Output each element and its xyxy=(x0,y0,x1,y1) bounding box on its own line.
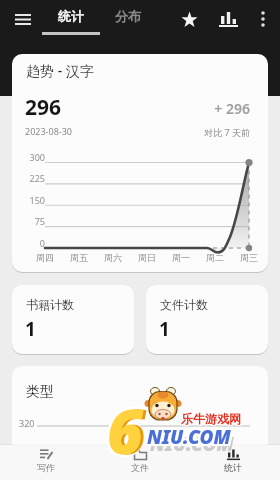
staticText: 趋势 - 汉字 xyxy=(26,61,94,80)
button[interactable] xyxy=(213,5,243,33)
button[interactable]: 文件计数 xyxy=(146,285,268,354)
staticText: 6 xyxy=(105,388,141,472)
staticText: 周三 xyxy=(232,252,266,263)
staticText: 乐牛游戏网 xyxy=(182,412,242,427)
staticText: 文件计数 xyxy=(160,297,208,312)
button[interactable] xyxy=(8,5,38,33)
button[interactable] xyxy=(249,5,277,33)
staticText: 6 xyxy=(105,386,141,470)
staticText: 周二 xyxy=(198,252,232,263)
staticText: NIU.COM xyxy=(145,422,229,448)
staticText: 乐牛游戏网 xyxy=(180,412,240,427)
staticText: 乐牛游戏网 xyxy=(182,410,242,425)
button[interactable] xyxy=(175,5,203,33)
staticText: NIU.COM xyxy=(150,431,234,457)
staticText: NIU.COM xyxy=(147,426,231,452)
staticText: 2023-08-30 xyxy=(25,125,72,137)
button[interactable]: 统计 xyxy=(200,446,266,480)
button[interactable]: 写作 xyxy=(13,446,79,480)
staticText: 150 xyxy=(12,194,45,206)
staticText: 周六 xyxy=(96,252,130,263)
staticText: 6 xyxy=(105,390,141,474)
staticText: 1 xyxy=(159,316,170,342)
staticText: 6 xyxy=(110,388,146,472)
staticText: 类型 xyxy=(26,383,54,401)
staticText: 文件 xyxy=(131,462,149,473)
staticText: 周一 xyxy=(164,252,198,263)
staticText: 写作 xyxy=(37,462,55,473)
staticText: 296 xyxy=(25,93,62,122)
staticText: 统计 xyxy=(58,8,84,24)
button[interactable]: 分布 xyxy=(100,0,156,35)
staticText: 6 xyxy=(109,388,145,472)
staticText: NIU.COM xyxy=(149,426,233,452)
staticText: NIU.COM xyxy=(147,424,231,450)
staticText: NIU.COM xyxy=(145,426,229,452)
staticText: 0 xyxy=(12,237,45,249)
staticText: NIU.COM xyxy=(149,424,233,450)
button[interactable]: 类型 xyxy=(12,366,268,480)
staticText: 6 xyxy=(109,386,145,470)
staticText: 1 xyxy=(25,316,36,342)
staticText: NIU.COM xyxy=(147,422,231,448)
button[interactable]: 文件 xyxy=(107,446,173,480)
staticText: 周五 xyxy=(62,252,96,263)
staticText: 乐牛游戏网 xyxy=(181,411,241,426)
staticText: NIU.COM xyxy=(149,422,233,448)
staticText: 6 xyxy=(107,386,143,470)
staticText: 6 xyxy=(107,388,143,472)
button[interactable]: 趋势 - 汉字 xyxy=(12,54,268,272)
staticText: 对比 7 天前 xyxy=(150,126,250,138)
staticText: 6 xyxy=(107,390,143,474)
staticText: 周四 xyxy=(28,252,62,263)
button[interactable]: 统计 xyxy=(42,0,100,35)
staticText: 分布 xyxy=(115,8,141,24)
staticText: 统计 xyxy=(224,462,242,473)
staticText: 乐牛游戏网 xyxy=(180,410,240,425)
staticText: 周日 xyxy=(130,252,164,263)
staticText: 书籍计数 xyxy=(26,297,74,312)
staticText: 225 xyxy=(12,172,45,184)
staticText: 300 xyxy=(12,151,45,163)
staticText: 320 xyxy=(19,417,35,429)
staticText: 6 xyxy=(109,390,145,474)
staticText: 75 xyxy=(12,215,45,227)
button[interactable]: 书籍计数 xyxy=(12,285,134,354)
staticText: NIU.COM xyxy=(145,424,229,450)
staticText: + 296 xyxy=(150,99,250,118)
